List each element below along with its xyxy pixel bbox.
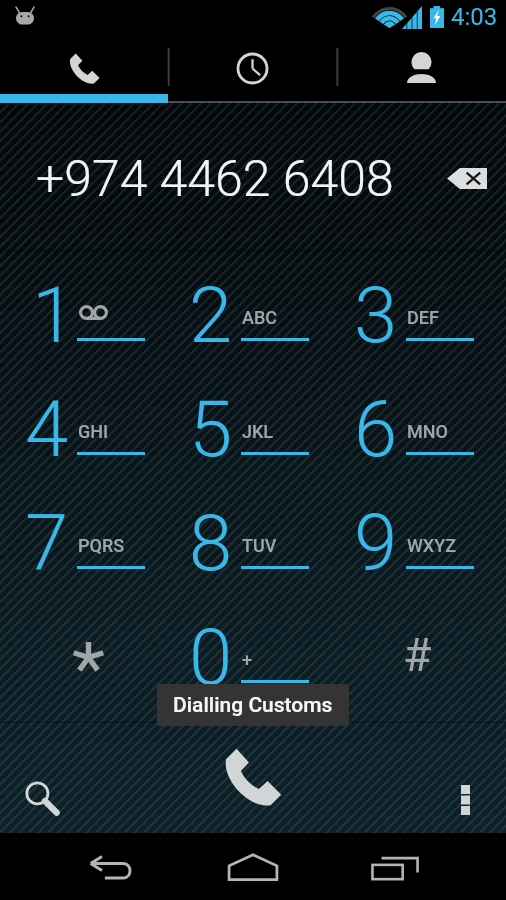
- button[interactable]: 5: [170, 371, 335, 485]
- staticText: ABC: [242, 307, 278, 328]
- staticText: 3: [354, 270, 398, 361]
- staticText: PQRS: [78, 535, 125, 556]
- button[interactable]: More options: [433, 769, 495, 831]
- button[interactable]: Home: [217, 838, 289, 896]
- button[interactable]: 0: [170, 599, 335, 713]
- staticText: 5: [189, 384, 233, 475]
- button[interactable]: Backspace: [439, 150, 495, 206]
- staticText: 0: [189, 612, 233, 703]
- staticText: GHI: [78, 421, 109, 442]
- button[interactable]: Call log: [168, 34, 337, 103]
- button[interactable]: #: [335, 599, 500, 713]
- staticText: WXYZ: [407, 535, 457, 556]
- staticText: 4: [25, 384, 69, 475]
- staticText: 4:03: [451, 3, 498, 31]
- button[interactable]: Back: [77, 838, 149, 896]
- staticText: TUV: [242, 535, 277, 556]
- button[interactable]: [6, 599, 170, 713]
- staticText: +974 4462 6408: [36, 150, 394, 209]
- staticText: 7: [25, 498, 69, 589]
- button[interactable]: Call: [208, 732, 298, 822]
- button[interactable]: Search: [11, 767, 73, 829]
- button[interactable]: 9: [335, 485, 500, 599]
- button[interactable]: Contacts: [337, 34, 506, 103]
- staticText: +: [242, 649, 253, 670]
- button[interactable]: 8: [170, 485, 335, 599]
- button[interactable]: 7: [6, 485, 170, 599]
- button[interactable]: 2: [170, 257, 335, 371]
- staticText: 1: [32, 270, 76, 361]
- staticText: 2: [189, 270, 233, 361]
- staticText: #: [403, 628, 432, 682]
- button[interactable]: 3: [335, 257, 500, 371]
- staticText: 9: [354, 498, 398, 589]
- button[interactable]: Recent apps: [359, 838, 431, 896]
- button[interactable]: Dialer: [0, 34, 168, 103]
- button[interactable]: 1: [6, 257, 170, 371]
- staticText: JKL: [242, 421, 274, 442]
- button[interactable]: 6: [335, 371, 500, 485]
- staticText: 6: [354, 384, 398, 475]
- staticText: MNO: [407, 421, 448, 442]
- button[interactable]: 4: [6, 371, 170, 485]
- staticText: Dialling Customs: [173, 693, 333, 718]
- staticText: 8: [189, 498, 233, 589]
- staticText: DEF: [407, 307, 439, 328]
